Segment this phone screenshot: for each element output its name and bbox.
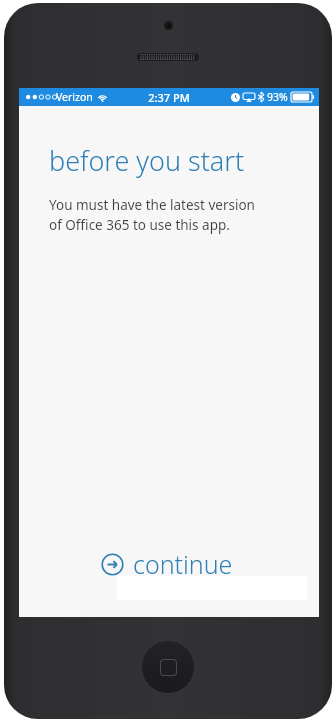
staticText: continue [133,547,233,581]
button[interactable]: Home [142,641,194,693]
staticText: You must have the latest version of Offi… [49,196,255,234]
staticText: before you start [49,142,245,179]
button[interactable]: Continue [97,543,237,585]
other: Continue [101,553,124,576]
staticText: 93% [267,90,288,104]
staticText: Verizon [56,90,93,104]
staticText: 2:37 PM [148,90,190,105]
